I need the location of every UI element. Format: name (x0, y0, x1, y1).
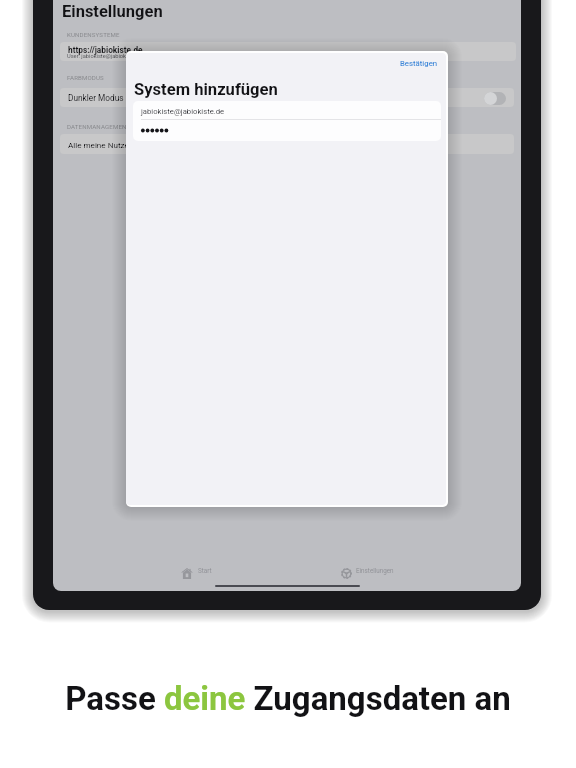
button[interactable]: Einstellungen (336, 564, 398, 581)
button[interactable] (60, 88, 514, 107)
staticText: Passe deine Zugangsdaten an (65, 679, 511, 718)
staticText: DATENMANAGEMENT (67, 123, 131, 130)
staticText: Einstellungen (62, 2, 163, 21)
staticText: jabiokiste@jabiokiste.de (141, 107, 225, 116)
staticText: https://jabiokiste.de (68, 45, 143, 55)
button[interactable]: Bestätigen (400, 59, 440, 71)
staticText: Bestätigen (400, 59, 438, 68)
staticText: FARBMODUS (67, 74, 104, 81)
staticText: Alle meine Nutzerdaten löschen (68, 140, 183, 149)
staticText: System hinzufügen (134, 80, 278, 99)
staticText: Dunkler Modus (68, 93, 124, 103)
button[interactable] (60, 134, 514, 154)
button[interactable] (60, 42, 516, 61)
button[interactable] (141, 123, 435, 138)
staticText: User: jabiokiste@jabiokiste.de (67, 53, 143, 60)
button[interactable]: Dunkler Modus umschalten (484, 92, 506, 105)
button[interactable]: Start (176, 564, 218, 581)
staticText: KUNDENSYSTEME (67, 31, 120, 38)
staticText: Start (198, 567, 212, 574)
staticText: Einstellungen (356, 567, 394, 574)
button[interactable]: jabiokiste@jabiokiste.de (141, 104, 435, 119)
